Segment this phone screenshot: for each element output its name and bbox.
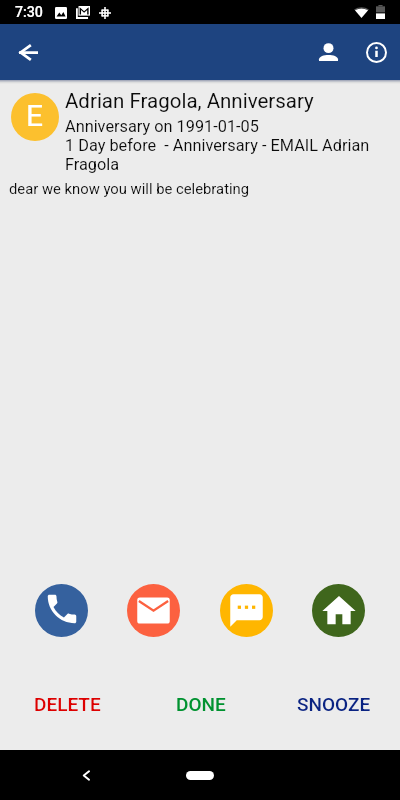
- staticText: 7:30: [15, 4, 43, 21]
- button[interactable]: Send message: [220, 584, 273, 637]
- button[interactable]: DONE: [134, 687, 267, 721]
- staticText: 1 Day before - Anniversary - EMAIL Adria…: [65, 136, 388, 174]
- button[interactable]: Home: [312, 584, 365, 637]
- button[interactable]: Home: [186, 771, 214, 780]
- staticText: SNOOZE: [297, 693, 371, 715]
- button[interactable]: Back: [82, 770, 90, 781]
- button[interactable]: Event info: [352, 28, 400, 76]
- button[interactable]: Navigate up: [4, 28, 52, 76]
- button[interactable]: Open contact: [304, 28, 352, 76]
- staticText: DELETE: [34, 693, 101, 715]
- button[interactable]: Call: [35, 584, 88, 637]
- button[interactable]: Email: [127, 584, 180, 637]
- staticText: Adrian Fragola, Anniversary: [65, 89, 314, 113]
- staticText: E: [26, 98, 44, 133]
- button[interactable]: DELETE: [0, 687, 134, 721]
- staticText: Anniversary on 1991-01-05: [65, 117, 259, 136]
- button[interactable]: SNOOZE: [267, 687, 400, 721]
- staticText: DONE: [176, 693, 226, 715]
- staticText: dear we know you will be celebrating: [9, 180, 250, 197]
